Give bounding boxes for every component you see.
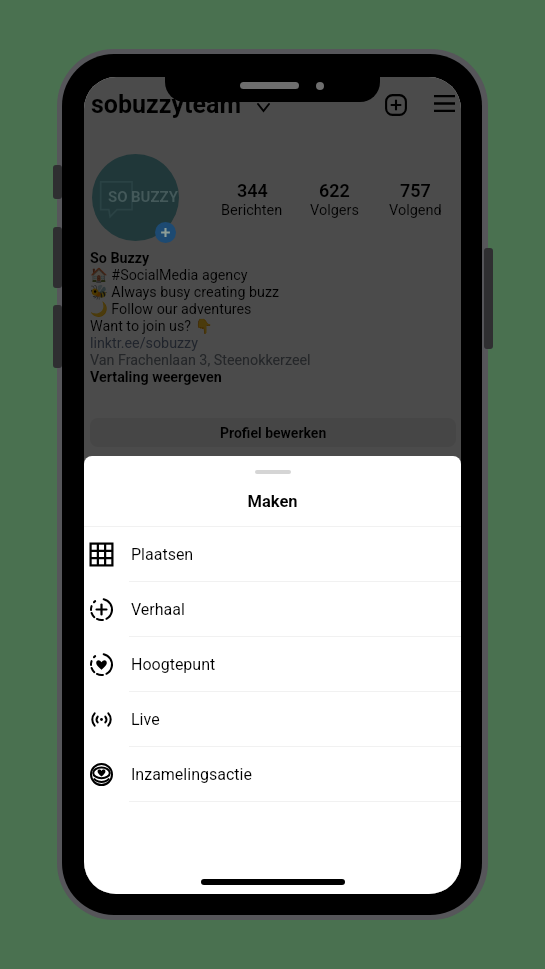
staticText: Volgend	[389, 202, 442, 219]
staticText: BUZZY	[131, 188, 178, 206]
staticText: Berichten	[221, 202, 283, 219]
staticText: Verhaal	[131, 600, 185, 619]
staticText: Maken	[84, 492, 461, 511]
button[interactable]: 622	[284, 180, 384, 219]
staticText: linktr.ee/sobuzzy	[90, 335, 198, 352]
staticText: Profiel bewerken	[220, 425, 327, 441]
staticText: 757	[400, 180, 431, 201]
staticText: 622	[319, 180, 350, 201]
staticText: Inzamelingsactie	[131, 765, 252, 784]
staticText: 344	[237, 180, 268, 201]
staticText: 🌙 Follow our adventures	[90, 301, 252, 318]
staticText: sobuzzyteam	[91, 90, 242, 119]
staticText: 🐝 Always busy creating buzz	[90, 284, 280, 301]
staticText: Live	[131, 710, 160, 729]
staticText: Van Frachenlaan 3, Steenokkerzeel	[90, 352, 311, 369]
button[interactable]: Profiel bewerken	[90, 418, 456, 447]
button[interactable]: Add to story	[155, 222, 176, 243]
button[interactable]: Profile photo	[92, 154, 179, 241]
button[interactable]: Verhaal	[84, 582, 461, 637]
button[interactable]: Live	[84, 692, 461, 747]
staticText: Hoogtepunt	[131, 655, 216, 674]
staticText: Vertaling weergeven	[90, 369, 222, 386]
button[interactable]: sobuzzyteam	[91, 90, 242, 119]
button[interactable]: Plaatsen	[84, 527, 461, 582]
staticText: Plaatsen	[131, 545, 194, 564]
staticText: 🏠 #SocialMedia agency	[90, 267, 248, 284]
button[interactable]: 757	[365, 180, 461, 219]
button[interactable]: 344	[202, 180, 302, 219]
button[interactable]: Inzamelingsactie	[84, 747, 461, 802]
button[interactable]: New post	[382, 91, 409, 118]
button[interactable]: Hoogtepunt	[84, 637, 461, 692]
button[interactable]: Menu	[430, 89, 459, 118]
staticText: SO	[108, 188, 128, 206]
staticText: Want to join us? 👇	[90, 318, 213, 335]
staticText: Volgers	[310, 202, 359, 219]
staticText: So Buzzy	[90, 250, 150, 267]
